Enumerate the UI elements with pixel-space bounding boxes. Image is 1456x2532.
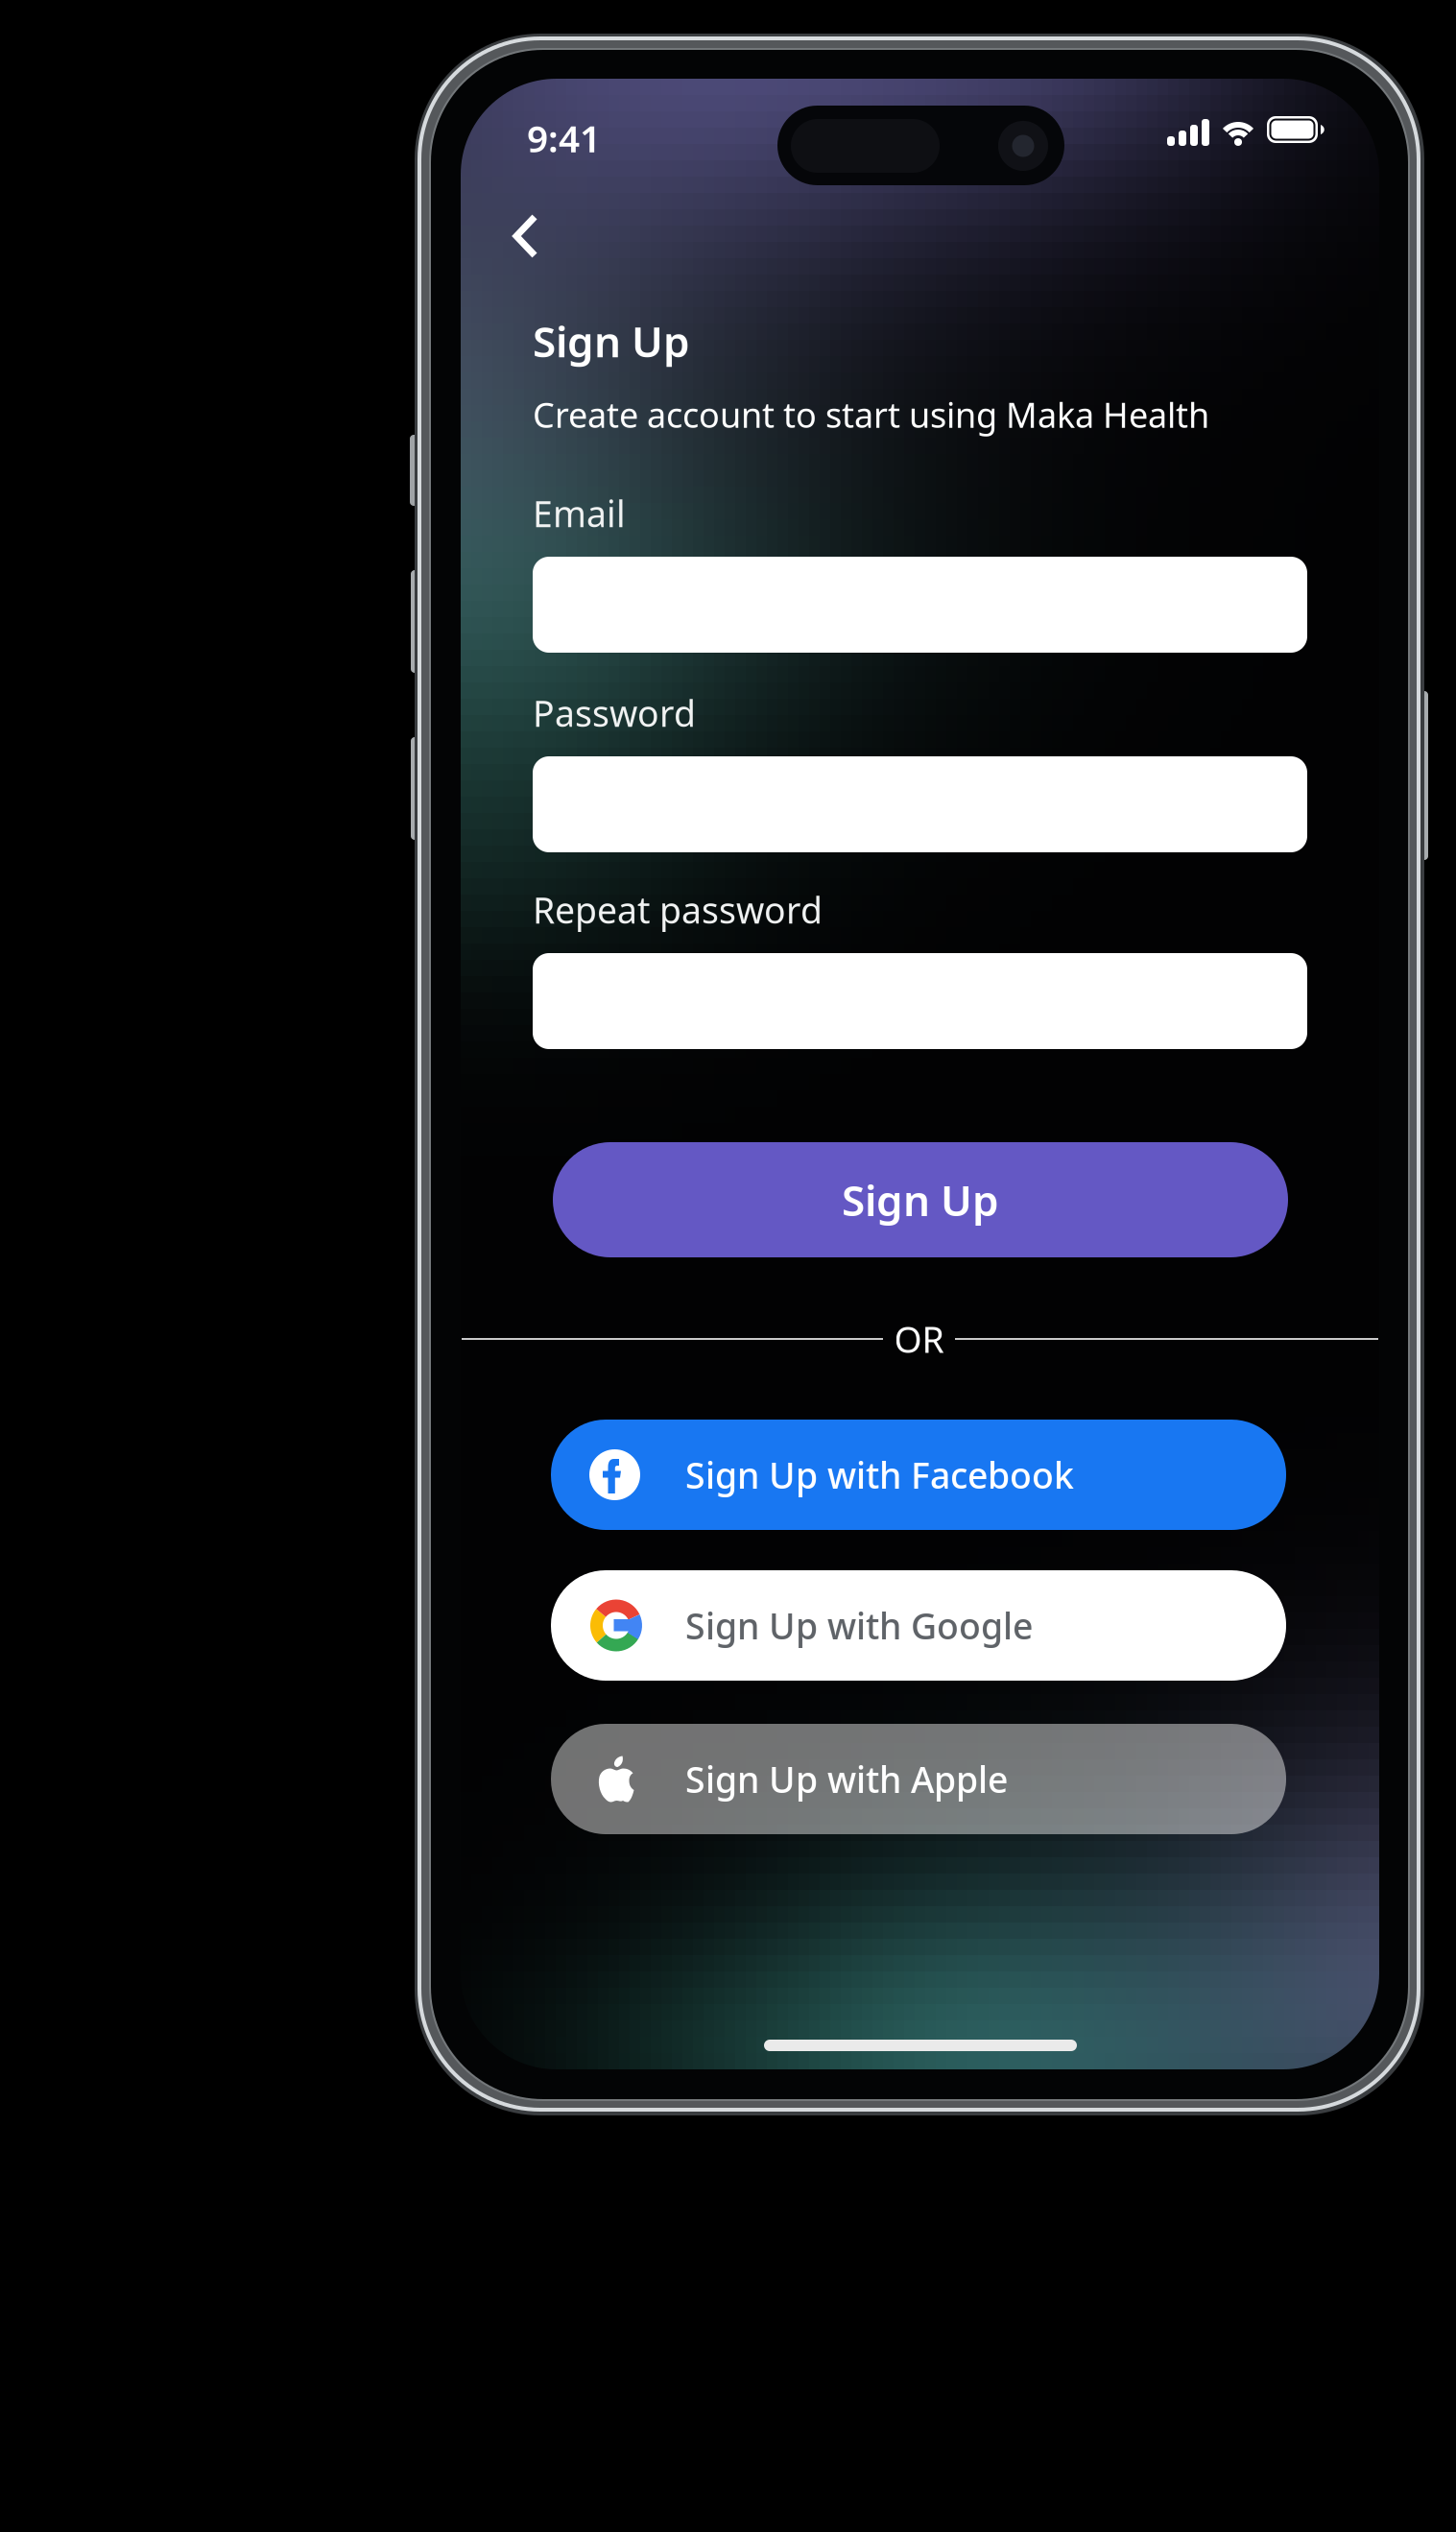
staticText: Sign Up bbox=[842, 1172, 999, 1228]
staticText: 9:41 bbox=[527, 113, 601, 162]
staticText: Sign Up with Apple bbox=[685, 1755, 1008, 1803]
staticText: Create account to start using Maka Healt… bbox=[533, 392, 1209, 437]
staticText: Email bbox=[533, 490, 626, 537]
button[interactable]: Sign Up with Facebook bbox=[551, 1420, 1286, 1530]
staticText: OR bbox=[894, 1315, 944, 1363]
button[interactable] bbox=[533, 557, 1307, 653]
button[interactable]: Sign Up with Apple bbox=[551, 1724, 1286, 1834]
button[interactable]: Back bbox=[503, 204, 547, 268]
button[interactable]: Sign Up with Google bbox=[551, 1570, 1286, 1681]
staticText: Sign Up with Facebook bbox=[685, 1451, 1074, 1499]
button[interactable] bbox=[533, 756, 1307, 852]
button[interactable] bbox=[533, 953, 1307, 1049]
staticText: Password bbox=[533, 689, 696, 737]
staticText: Repeat password bbox=[533, 886, 823, 934]
staticText: Sign Up with Google bbox=[685, 1602, 1033, 1649]
button[interactable]: Sign Up bbox=[553, 1142, 1288, 1257]
staticText: Sign Up bbox=[533, 313, 690, 369]
